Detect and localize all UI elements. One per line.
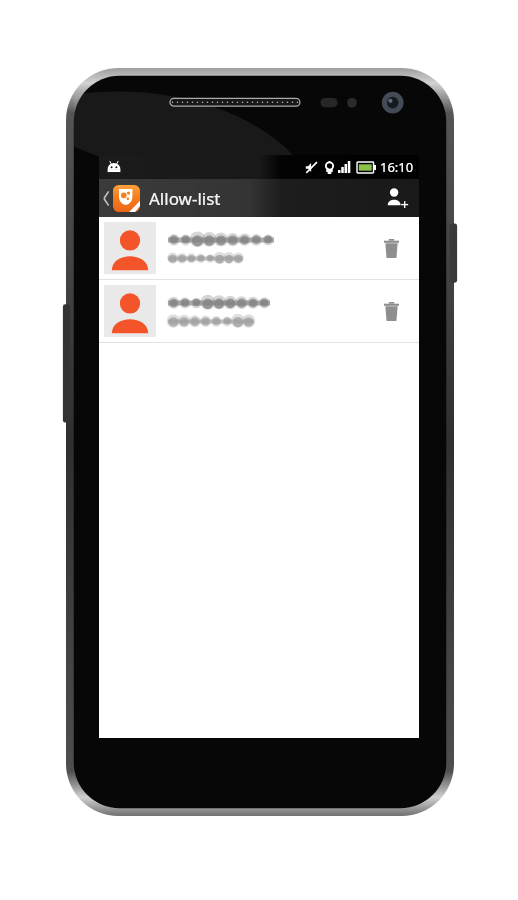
button[interactable]: Delete xyxy=(99,217,419,279)
button[interactable]: Delete xyxy=(99,280,419,342)
staticText: 16:10 xyxy=(380,158,414,176)
button[interactable]: Delete xyxy=(367,280,415,342)
button[interactable]: Allow-list xyxy=(99,179,221,217)
button[interactable]: Delete xyxy=(367,217,415,279)
staticText: Allow-list xyxy=(149,187,221,210)
button[interactable]: Add contact xyxy=(375,179,419,217)
